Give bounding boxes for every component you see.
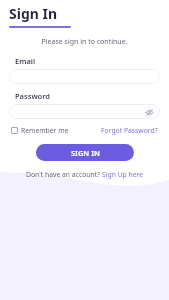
button[interactable]: Show password [144,107,154,117]
button[interactable]: Show password [9,104,160,119]
button[interactable]: SIGN IN [36,144,134,161]
staticText: Sign In [9,4,58,23]
staticText: Forgot Password? [101,126,158,135]
staticText: Please sign in to continue. [9,37,160,47]
staticText: SIGN IN [71,148,100,158]
staticText: Password [15,91,51,101]
staticText: Sign Up here [102,170,144,179]
button[interactable]: Forgot Password? [99,125,160,136]
staticText: Email [15,56,36,66]
button[interactable] [9,69,160,84]
button[interactable]: Remember me [9,125,71,136]
staticText: Remember me [21,126,69,135]
staticText: Don't have an account? [26,170,102,179]
button[interactable]: Sign Up here [102,170,144,179]
